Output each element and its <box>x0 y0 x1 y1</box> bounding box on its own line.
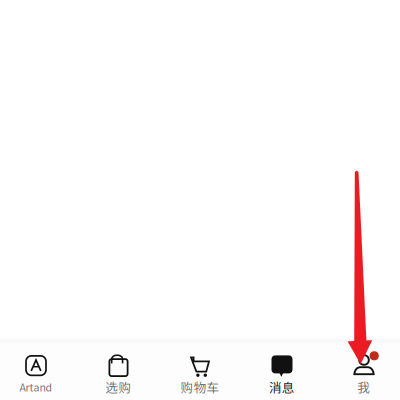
button[interactable]: 我 <box>324 339 400 400</box>
button[interactable]: 选购 <box>78 339 158 400</box>
staticText: 购物车 <box>180 378 219 396</box>
button[interactable]: Artand <box>0 339 76 400</box>
staticText: Artand <box>19 379 52 395</box>
button[interactable]: 消息 <box>242 339 322 400</box>
staticText: 选购 <box>105 378 131 396</box>
staticText: 消息 <box>269 378 295 396</box>
staticText: 我 <box>357 378 370 396</box>
button[interactable]: 购物车 <box>160 339 240 400</box>
